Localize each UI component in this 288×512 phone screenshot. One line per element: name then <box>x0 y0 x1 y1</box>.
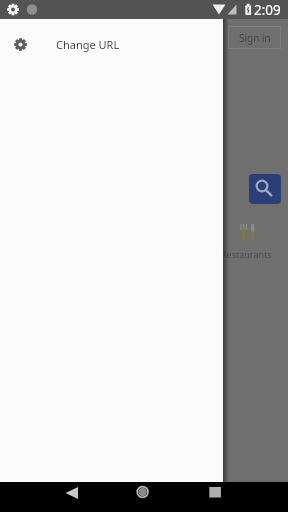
button[interactable]: Change URL <box>0 19 223 69</box>
staticText: Change URL <box>56 37 120 52</box>
button[interactable] <box>249 174 281 204</box>
button[interactable] <box>0 482 96 512</box>
button[interactable] <box>192 482 288 512</box>
staticText: 2:09 <box>254 1 281 19</box>
staticText: Sign in <box>239 31 271 45</box>
button[interactable]: Sign in <box>228 26 281 49</box>
button[interactable] <box>96 482 192 512</box>
staticText: Restaurants <box>221 248 272 260</box>
